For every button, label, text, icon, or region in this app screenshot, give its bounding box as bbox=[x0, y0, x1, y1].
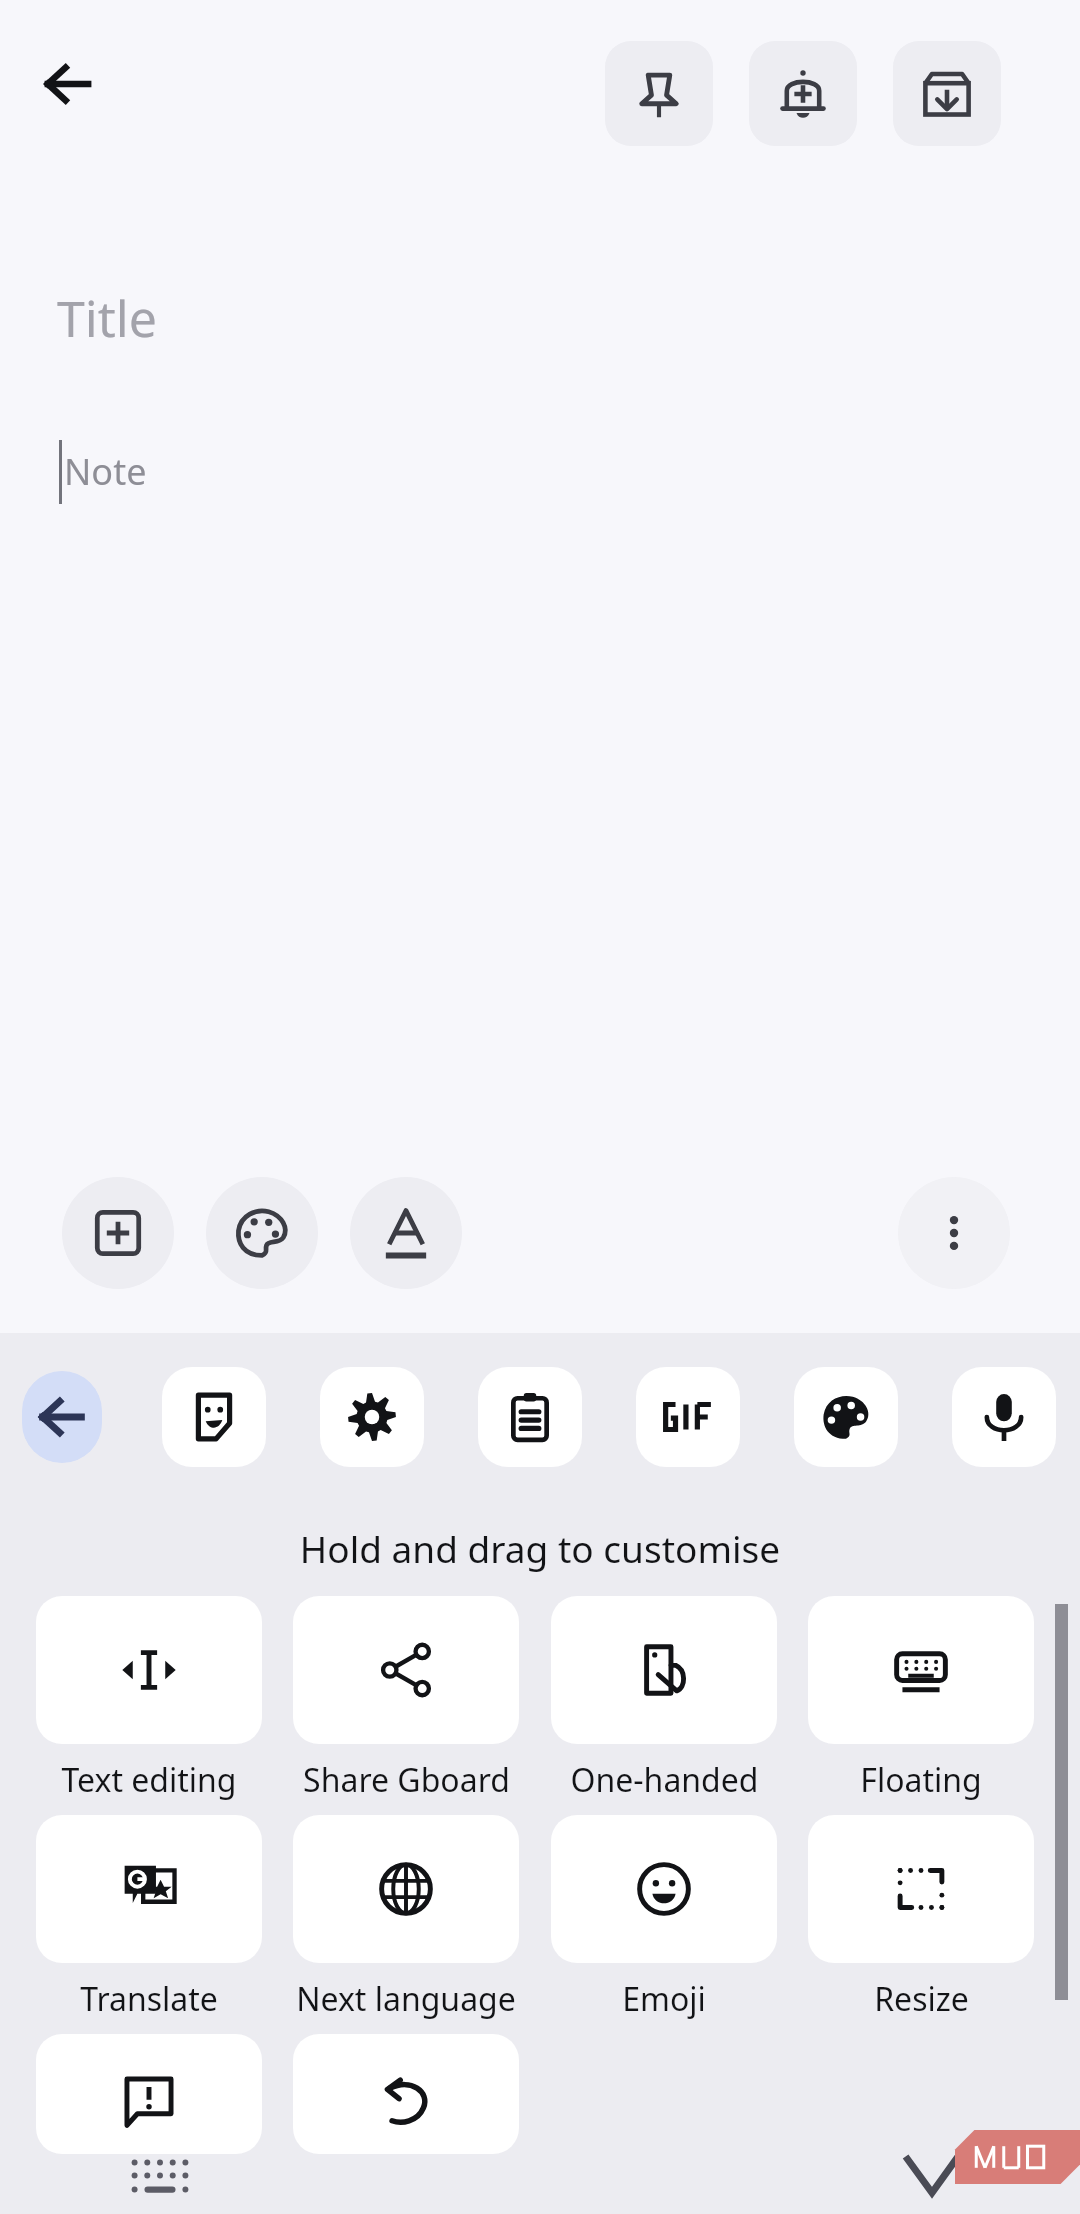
staticText: Resize bbox=[874, 1977, 969, 2021]
button[interactable]: Pin bbox=[605, 41, 713, 146]
staticText: Title bbox=[57, 284, 157, 352]
button[interactable]: Archive bbox=[893, 41, 1001, 146]
button[interactable]: Voice input bbox=[952, 1367, 1056, 1467]
button[interactable]: Clipboard bbox=[478, 1367, 582, 1467]
staticText: Emoji bbox=[622, 1977, 706, 2021]
staticText: Text editing bbox=[61, 1758, 237, 1802]
button[interactable]: Colour bbox=[206, 1177, 318, 1289]
button[interactable]: Stickers bbox=[162, 1367, 266, 1467]
button[interactable]: GIF bbox=[636, 1367, 740, 1467]
button[interactable]: Translate bbox=[36, 1815, 262, 2021]
button[interactable]: Text editing bbox=[36, 1596, 262, 1802]
button[interactable]: Resize bbox=[808, 1815, 1034, 2021]
button[interactable]: Themes bbox=[794, 1367, 898, 1467]
button[interactable]: Add bbox=[62, 1177, 174, 1289]
staticText: Note bbox=[64, 447, 147, 496]
button[interactable]: Text formatting bbox=[350, 1177, 462, 1289]
button[interactable]: Undo bbox=[293, 2034, 519, 2154]
button[interactable]: Done bbox=[880, 2128, 984, 2214]
button[interactable]: Switch keyboard bbox=[108, 2138, 212, 2214]
staticText: One-handed bbox=[570, 1758, 759, 1802]
button[interactable]: Emoji bbox=[551, 1815, 777, 2021]
staticText: Translate bbox=[80, 1977, 218, 2021]
staticText: Next language bbox=[296, 1977, 516, 2021]
button[interactable]: More options bbox=[898, 1177, 1010, 1289]
button[interactable]: Add reminder bbox=[749, 41, 857, 146]
staticText: Hold and drag to customise bbox=[0, 1523, 1080, 1573]
staticText: Floating bbox=[860, 1758, 982, 1802]
button[interactable]: Floating bbox=[808, 1596, 1034, 1802]
button[interactable]: Share Gboard bbox=[293, 1596, 519, 1802]
button[interactable]: Back bbox=[22, 38, 114, 130]
staticText: Share Gboard bbox=[303, 1758, 510, 1802]
button[interactable]: One-handed bbox=[551, 1596, 777, 1802]
button[interactable]: Feedback bbox=[36, 2034, 262, 2154]
button[interactable]: Settings bbox=[320, 1367, 424, 1467]
button[interactable]: Back bbox=[22, 1371, 102, 1463]
button[interactable]: Next language bbox=[293, 1815, 519, 2021]
